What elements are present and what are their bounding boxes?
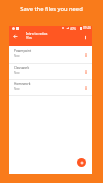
- staticText: 40%: [70, 27, 76, 31]
- button[interactable]: Classwork: [9, 63, 92, 79]
- staticText: Save the files you need: [0, 5, 103, 13]
- staticText: Homework: [14, 82, 31, 86]
- staticText: Files: [26, 36, 32, 40]
- button[interactable]: More: [82, 68, 89, 75]
- staticText: Now: [14, 54, 20, 58]
- staticText: Intro to ratios: [26, 31, 48, 35]
- button[interactable]: More: [82, 84, 89, 91]
- staticText: Now: [14, 87, 20, 91]
- button[interactable]: Powerpoint: [9, 46, 92, 63]
- staticText: Powerpoint: [14, 49, 32, 53]
- button[interactable]: Back: [10, 31, 20, 41]
- button[interactable]: More options: [81, 33, 90, 42]
- staticText: Classwork: [14, 66, 30, 70]
- staticText: Now: [14, 71, 20, 75]
- button[interactable]: Homework: [9, 79, 92, 95]
- button[interactable]: More: [82, 51, 89, 58]
- button[interactable]: Add: [77, 158, 86, 167]
- staticText: 09:26: [83, 26, 92, 30]
